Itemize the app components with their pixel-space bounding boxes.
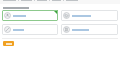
button[interactable]: Company contact type [61, 24, 118, 35]
button[interactable]: Person contact type, selected [2, 10, 58, 21]
button[interactable]: Dashboard [2, 0, 17, 1]
button[interactable]: Select type [65, 0, 79, 1]
button[interactable]: Create [51, 0, 62, 1]
button[interactable] [3, 41, 14, 46]
button[interactable]: Email contact type [61, 10, 118, 21]
button[interactable]: Supplier contact type [2, 24, 58, 35]
button[interactable]: Contacts [20, 0, 33, 1]
button[interactable]: Persons [36, 0, 48, 1]
